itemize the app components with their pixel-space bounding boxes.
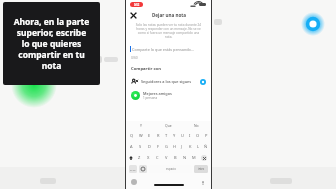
button[interactable]: Que bbox=[154, 121, 182, 130]
staticText: I bbox=[189, 133, 191, 138]
staticText: Z bbox=[138, 155, 141, 160]
staticText: V bbox=[165, 155, 168, 160]
button[interactable]: O bbox=[194, 130, 202, 141]
staticText: M bbox=[192, 155, 196, 160]
button[interactable]: intro bbox=[194, 165, 208, 173]
staticText: Y bbox=[173, 133, 176, 138]
staticText: Solo las notas pueden ver tu nota durant… bbox=[134, 23, 203, 39]
staticText: E bbox=[148, 133, 151, 138]
button[interactable]: Ahora, en la parte superior, escribe lo … bbox=[3, 2, 100, 85]
staticText: Ñ bbox=[204, 144, 208, 149]
staticText: Dejar una nota bbox=[152, 12, 186, 18]
staticText: Seguidores a los que sigues bbox=[141, 79, 192, 84]
button[interactable]: Q bbox=[127, 130, 136, 141]
staticText: 0:52 bbox=[134, 3, 140, 7]
staticText: intro bbox=[198, 167, 205, 171]
button[interactable]: Borrar bbox=[198, 152, 210, 163]
button[interactable]: Ñ bbox=[202, 141, 210, 152]
button[interactable]: Emoji bbox=[139, 165, 147, 173]
staticText: J bbox=[181, 144, 183, 149]
staticText: W bbox=[139, 133, 143, 138]
button[interactable]: Mayúsculas bbox=[127, 152, 135, 163]
button[interactable]: No bbox=[182, 121, 210, 130]
staticText: 0/60 bbox=[131, 56, 138, 60]
button[interactable]: M bbox=[189, 152, 198, 163]
button[interactable]: J bbox=[178, 141, 186, 152]
button[interactable]: S bbox=[136, 141, 145, 152]
staticText: G bbox=[165, 144, 168, 149]
staticText: A bbox=[130, 144, 133, 149]
button[interactable]: K bbox=[186, 141, 194, 152]
staticText: F bbox=[157, 144, 160, 149]
staticText: B bbox=[174, 155, 177, 160]
button[interactable]: Comparte lo que estás pensando... bbox=[130, 43, 207, 55]
staticText: Y bbox=[140, 123, 142, 128]
button[interactable]: ?123 bbox=[129, 165, 137, 173]
staticText: P bbox=[205, 133, 208, 138]
button[interactable]: F bbox=[154, 141, 162, 152]
button[interactable]: Cambiar teclado bbox=[131, 179, 137, 185]
staticText: espacio bbox=[166, 167, 176, 171]
staticText: Ahora, en la parte superior, escribe lo … bbox=[12, 16, 91, 71]
button[interactable]: Seguidores a los que sigues bbox=[131, 76, 206, 87]
button[interactable]: V bbox=[162, 152, 171, 163]
staticText: Comparte lo que estás pensando... bbox=[132, 47, 194, 52]
button[interactable]: X bbox=[144, 152, 153, 163]
button[interactable]: I bbox=[186, 130, 194, 141]
button[interactable]: Cerrar bbox=[129, 11, 138, 20]
staticText: O bbox=[196, 133, 200, 138]
staticText: D bbox=[148, 144, 151, 149]
button[interactable]: E bbox=[145, 130, 154, 141]
button[interactable]: L bbox=[194, 141, 202, 152]
staticText: L bbox=[197, 144, 200, 149]
button[interactable]: T bbox=[162, 130, 170, 141]
staticText: S bbox=[139, 144, 142, 149]
staticText: Q bbox=[130, 133, 134, 138]
button[interactable]: H bbox=[170, 141, 178, 152]
staticText: N bbox=[183, 155, 187, 160]
button[interactable]: G bbox=[162, 141, 170, 152]
staticText: Compartir con bbox=[131, 66, 161, 72]
button[interactable]: W bbox=[136, 130, 145, 141]
button[interactable]: Z bbox=[135, 152, 144, 163]
staticText: U bbox=[181, 133, 184, 138]
staticText: C bbox=[156, 155, 159, 160]
button[interactable]: D bbox=[145, 141, 154, 152]
staticText: K bbox=[189, 144, 192, 149]
button[interactable]: Y bbox=[127, 121, 154, 130]
button[interactable]: Voz bbox=[199, 179, 206, 186]
button[interactable]: P bbox=[202, 130, 210, 141]
button[interactable]: N bbox=[180, 152, 189, 163]
staticText: ?123 bbox=[130, 168, 136, 171]
button[interactable]: C bbox=[153, 152, 162, 163]
staticText: Mejores amigos bbox=[143, 91, 172, 96]
staticText: X bbox=[147, 155, 150, 160]
staticText: T bbox=[165, 133, 168, 138]
staticText: No bbox=[194, 123, 199, 128]
button[interactable]: B bbox=[171, 152, 180, 163]
staticText: R bbox=[157, 133, 160, 138]
staticText: 1 persona bbox=[143, 96, 158, 100]
staticText: H bbox=[173, 144, 176, 149]
button[interactable]: R bbox=[154, 130, 162, 141]
staticText: Que bbox=[165, 123, 172, 128]
button[interactable]: U bbox=[178, 130, 186, 141]
button[interactable]: espacio bbox=[149, 165, 192, 173]
button[interactable]: A bbox=[127, 141, 136, 152]
button[interactable]: Y bbox=[170, 130, 178, 141]
button[interactable]: Mejores amigos bbox=[131, 89, 206, 102]
